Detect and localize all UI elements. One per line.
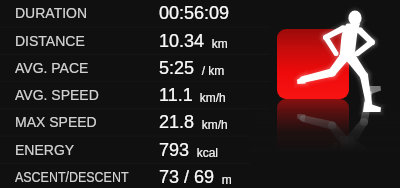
staticText: AVG. PACE [15, 60, 89, 76]
staticText: km/h [195, 118, 228, 131]
staticText: ASCENT/DESCENT [15, 169, 129, 185]
staticText: / km [195, 64, 225, 77]
staticText: m [215, 173, 232, 186]
staticText: 793 [159, 140, 190, 160]
button[interactable]: AVG. PACE [0, 54, 400, 81]
staticText: km [205, 37, 228, 50]
button[interactable]: DISTANCE [0, 27, 400, 54]
button[interactable]: DURATION [0, 0, 400, 26]
button[interactable]: ASCENT/DESCENT [0, 163, 400, 188]
staticText: kcal [190, 146, 219, 159]
button[interactable]: MAX SPEED [0, 108, 400, 135]
staticText: AVG. SPEED [15, 87, 99, 103]
staticText: 73 / 69 [159, 167, 215, 187]
staticText: DISTANCE [15, 33, 85, 49]
staticText: ENERGY [15, 142, 75, 158]
staticText: km/h [193, 91, 226, 104]
staticText: 5:25 [159, 58, 195, 78]
button[interactable]: AVG. SPEED [0, 81, 400, 108]
button[interactable]: ENERGY [0, 136, 400, 163]
staticText: 00:56:09 [159, 3, 230, 23]
button[interactable]: Running activity [0, 0, 400, 188]
staticText: 10.34 [159, 31, 205, 51]
staticText: DURATION [15, 5, 88, 21]
staticText: MAX SPEED [15, 114, 97, 130]
staticText: 11.1 [159, 85, 193, 105]
staticText: 21.8 [159, 112, 195, 132]
